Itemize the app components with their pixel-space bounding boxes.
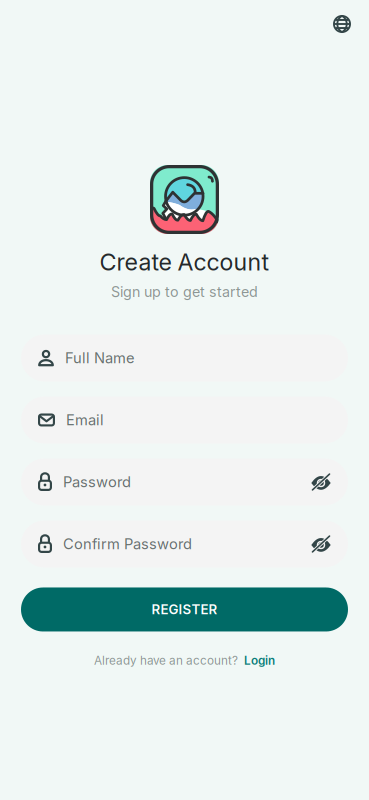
staticText: Full Name <box>65 349 135 367</box>
staticText: Sign up to get started <box>111 283 258 300</box>
button[interactable]: Login <box>244 653 275 668</box>
staticText: Confirm Password <box>63 535 192 553</box>
button[interactable]: Language <box>324 6 360 42</box>
button[interactable]: Confirm Password <box>21 520 348 567</box>
staticText: Email <box>66 411 104 429</box>
staticText: Create Account <box>99 248 269 276</box>
button[interactable]: Full Name <box>21 334 348 381</box>
button[interactable]: Password <box>21 458 348 505</box>
staticText: Already have an account? <box>94 653 238 668</box>
staticText: REGISTER <box>151 601 217 617</box>
staticText: Login <box>244 653 275 668</box>
button[interactable]: Email <box>21 396 348 443</box>
button[interactable]: REGISTER <box>21 587 348 631</box>
staticText: Password <box>63 473 131 491</box>
